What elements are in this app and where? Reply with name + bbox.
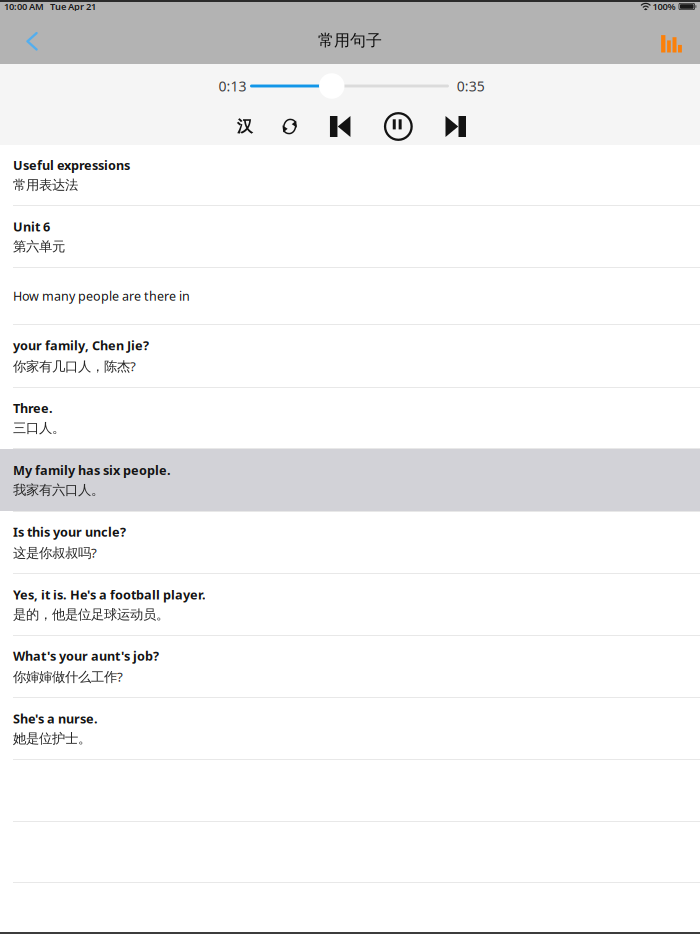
staticText: Three. [13,399,53,417]
staticText: 我家有六口人。 [13,482,104,498]
button[interactable]: Next [428,108,483,144]
staticText: your family, Chen Jie? [13,337,149,354]
button[interactable]: Chinese [222,108,267,144]
button[interactable]: Audio levels [643,11,700,64]
staticText: 0:13 [219,76,247,96]
button[interactable]: Unit 6 [0,206,700,268]
staticText: 三口人。 [13,420,65,436]
staticText: She's a nurse. [13,710,98,727]
staticText: 常用句子 [318,30,382,50]
staticText: 常用表达法 [13,177,78,193]
staticText: What's your aunt's job? [13,647,159,665]
staticText: Useful expressions [13,156,130,174]
staticText: Unit 6 [13,218,50,235]
button[interactable]: My family has six people. [0,449,700,512]
staticText: 你家有几口人，陈杰? [13,357,136,375]
staticText: 第六单元 [13,238,65,255]
button[interactable]: What's your aunt's job? [0,636,700,698]
staticText: Tue Apr 21 [50,0,96,13]
staticText: 这是你叔叔吗? [13,543,97,562]
button[interactable]: Back [0,11,64,64]
staticText: 是的，他是位足球运动员。 [13,606,169,623]
button[interactable]: Useful expressions [0,145,700,206]
button[interactable]: Yes, it is. He's a football player. [0,574,700,636]
button[interactable]: She's a nurse. [0,698,700,760]
button[interactable]: Previous [312,108,368,144]
staticText: Yes, it is. He's a football player. [13,586,206,603]
staticText: 你婶婶做什么工作? [13,667,123,686]
button[interactable]: Repeat [267,108,312,144]
staticText: 100% [653,0,676,13]
staticText: My family has six people. [13,461,171,479]
button[interactable]: Pause [368,108,428,144]
staticText: 0:35 [457,76,485,96]
staticText: Is this your uncle? [13,523,126,541]
button[interactable]: Is this your uncle? [0,512,700,574]
button[interactable]: Three. [0,388,700,449]
staticText: 她是位护士。 [13,730,91,747]
staticText: How many people are there in [13,287,190,305]
button[interactable]: How many people are there in [0,268,700,325]
staticText: 汉 [237,116,253,137]
button[interactable]: your family, Chen Jie? [0,325,700,388]
staticText: 10:00 AM [4,0,44,13]
